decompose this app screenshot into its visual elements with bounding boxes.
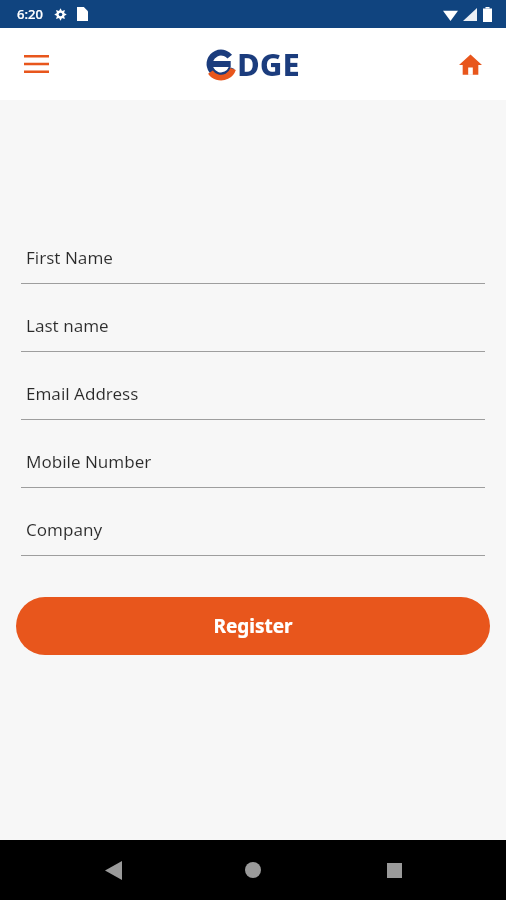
staticText: Email Address — [26, 382, 139, 405]
staticText: Last name — [26, 314, 109, 337]
button[interactable]: Recent apps — [366, 842, 422, 898]
button[interactable]: Register — [16, 597, 490, 655]
staticText: Mobile Number — [26, 450, 152, 473]
button[interactable]: Open navigation menu — [12, 40, 60, 88]
button[interactable]: Mobile Number — [0, 450, 506, 488]
staticText: 6:20 — [17, 5, 43, 23]
button[interactable]: Home — [225, 842, 281, 898]
button[interactable]: Company — [0, 518, 506, 556]
staticText: First Name — [26, 246, 113, 269]
staticText: Company — [26, 518, 103, 541]
button[interactable]: Back — [85, 842, 141, 898]
staticText: DGE — [237, 43, 300, 85]
button[interactable]: Last name — [0, 314, 506, 352]
staticText: Register — [213, 613, 293, 639]
button[interactable]: First Name — [0, 246, 506, 284]
button[interactable]: Home — [446, 40, 494, 88]
button[interactable]: Email Address — [0, 382, 506, 420]
